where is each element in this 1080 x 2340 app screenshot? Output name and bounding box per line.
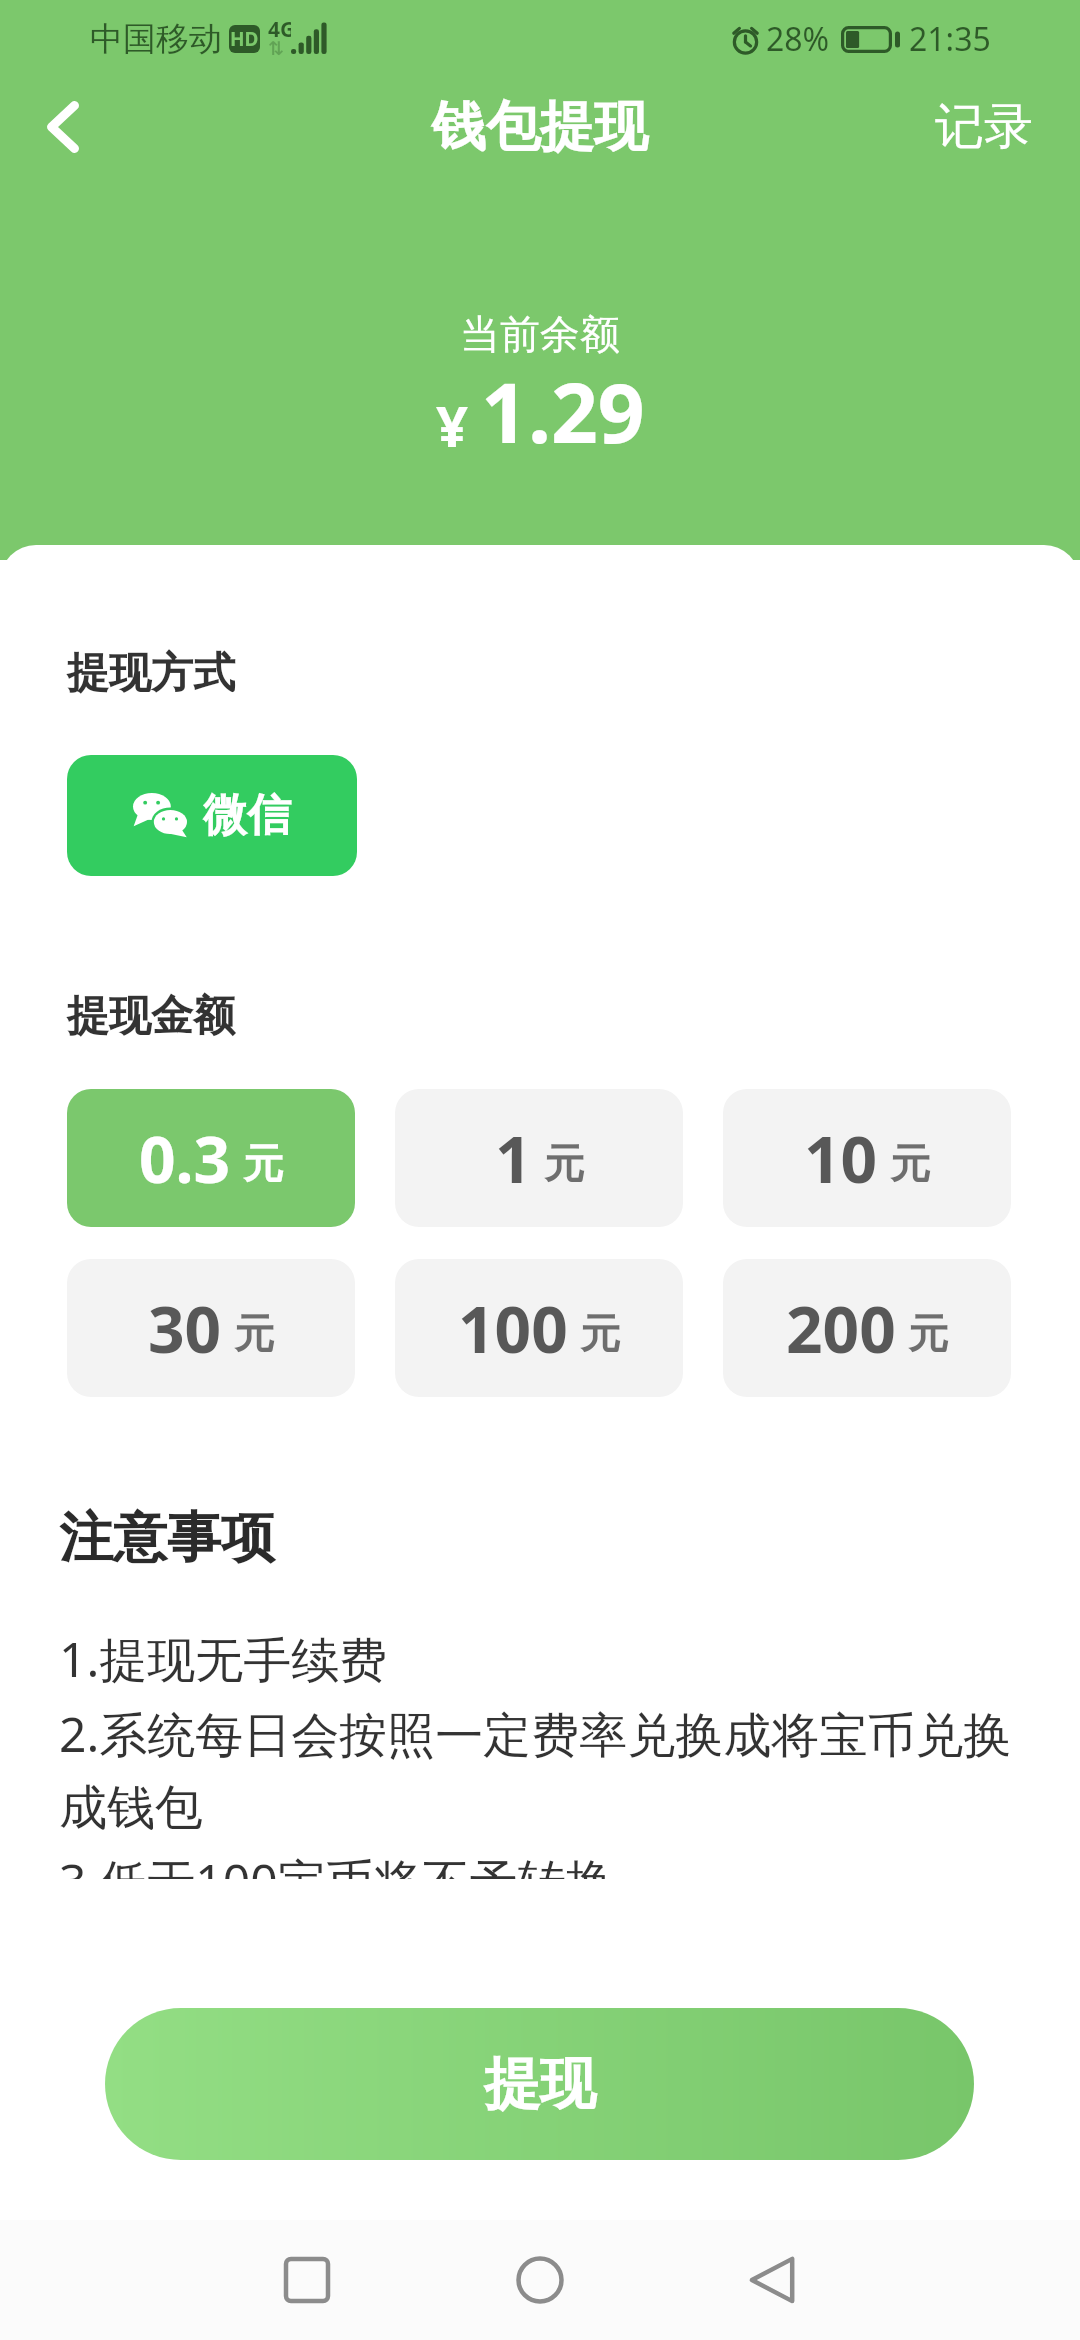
- staticText: 当前余额: [0, 309, 1080, 359]
- staticText: ⇅: [268, 37, 284, 59]
- staticText: 提现金额: [67, 990, 235, 1043]
- staticText: 1.29: [481, 355, 645, 467]
- staticText: 元: [890, 1138, 930, 1188]
- staticText: 0.3: [139, 1115, 231, 1202]
- staticText: HD: [230, 26, 259, 52]
- button[interactable]: 1: [395, 1089, 683, 1227]
- button[interactable]: 0.3: [67, 1089, 355, 1227]
- staticText: 10: [804, 1115, 878, 1202]
- staticText: ¥: [436, 387, 469, 463]
- staticText: 30: [148, 1285, 222, 1372]
- staticText: 中国移动: [90, 18, 222, 60]
- button[interactable]: 30: [67, 1259, 355, 1397]
- staticText: 微信: [203, 788, 291, 843]
- staticText: 100: [458, 1285, 568, 1372]
- staticText: 1: [495, 1115, 532, 1202]
- staticText: 28%: [766, 17, 830, 61]
- button[interactable]: Home: [480, 2220, 600, 2340]
- staticText: 元: [908, 1308, 948, 1358]
- staticText: 提现: [484, 2049, 596, 2120]
- button[interactable]: Recents: [247, 2220, 367, 2340]
- button[interactable]: Back: [713, 2220, 833, 2340]
- staticText: 记录: [935, 96, 1033, 158]
- button[interactable]: 微信: [67, 755, 357, 876]
- button[interactable]: 100: [395, 1259, 683, 1397]
- button[interactable]: 10: [723, 1089, 1011, 1227]
- staticText: 提现方式: [67, 647, 235, 700]
- staticText: 元: [580, 1308, 620, 1358]
- staticText: 元: [243, 1138, 283, 1188]
- staticText: 1.提现无手续费 2.系统每日会按照一定费率兑换成将宝币兑换成钱包 3.低于10…: [59, 1620, 1021, 1879]
- staticText: 元: [544, 1138, 584, 1188]
- staticText: 元: [234, 1308, 274, 1358]
- button[interactable]: 记录: [935, 96, 1033, 158]
- button[interactable]: Back: [13, 77, 113, 177]
- staticText: 4G: [268, 15, 291, 44]
- staticText: 注意事项: [59, 1504, 275, 1572]
- staticText: 200: [786, 1285, 896, 1372]
- staticText: 钱包提现: [432, 93, 648, 161]
- button[interactable]: 200: [723, 1259, 1011, 1397]
- button[interactable]: 提现: [105, 2008, 974, 2160]
- staticText: 21:35: [909, 17, 991, 61]
